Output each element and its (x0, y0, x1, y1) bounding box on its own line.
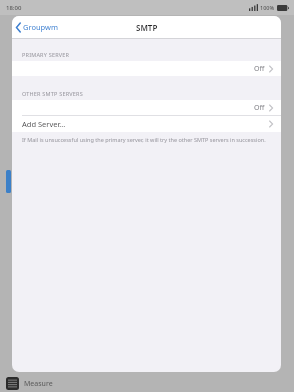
button[interactable]: Measure (6, 377, 53, 390)
button[interactable]: Add Server... (12, 116, 281, 132)
other: Open (269, 121, 273, 127)
staticText: SMTP (136, 22, 158, 33)
staticText: OTHER SMTP SERVERS (22, 90, 83, 97)
staticText: Measure (24, 379, 53, 389)
button[interactable]: Off (12, 61, 281, 76)
other: Open (269, 105, 273, 111)
button[interactable]: Off (12, 100, 281, 115)
staticText: 100% (260, 4, 275, 11)
staticText: Groupwm (23, 22, 58, 32)
staticText: If Mail is unsuccessful using the primar… (22, 136, 266, 143)
button[interactable]: Groupwm (12, 19, 64, 35)
other: Open (269, 66, 273, 72)
staticText: Add Server... (22, 119, 66, 129)
staticText: Off (254, 64, 265, 74)
staticText: Off (254, 103, 265, 113)
staticText: 18:00 (6, 4, 22, 12)
staticText: PRIMARY SERVER (22, 51, 70, 58)
